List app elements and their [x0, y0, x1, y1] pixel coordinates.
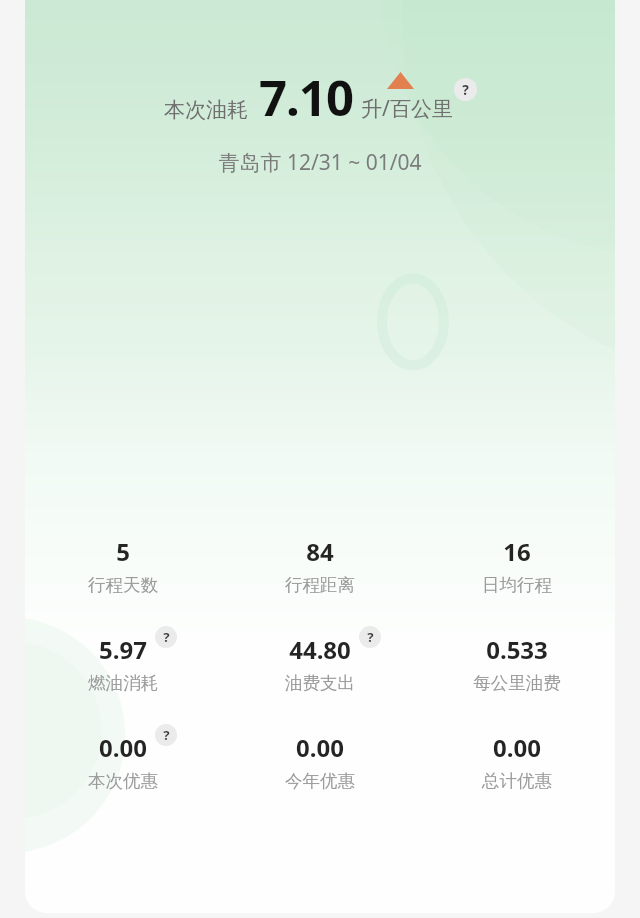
- button[interactable]: 说明: [155, 724, 177, 746]
- staticText: 燃油消耗: [88, 672, 158, 694]
- staticText: 0.533: [486, 633, 548, 666]
- button[interactable]: 5: [25, 535, 221, 596]
- button[interactable]: 84: [221, 535, 418, 596]
- staticText: ?: [462, 80, 469, 99]
- staticText: ?: [163, 628, 170, 646]
- staticText: 0.00: [296, 731, 344, 764]
- staticText: 5: [116, 535, 130, 568]
- staticText: 本次优惠: [88, 770, 158, 792]
- staticText: 行程天数: [88, 574, 158, 596]
- button[interactable]: 16: [418, 535, 615, 596]
- staticText: ?: [163, 726, 170, 744]
- staticText: 本次油耗: [164, 97, 248, 123]
- button[interactable]: 说明: [155, 626, 177, 648]
- staticText: 44.80: [289, 633, 351, 666]
- staticText: 今年优惠: [285, 770, 355, 792]
- staticText: 行程距离: [285, 574, 355, 596]
- staticText: 16: [503, 535, 531, 568]
- button[interactable]: 说明: [359, 626, 381, 648]
- staticText: 每公里油费: [473, 672, 561, 694]
- button[interactable]: 0.00: [25, 731, 221, 792]
- button[interactable]: 44.80: [221, 633, 418, 694]
- button[interactable]: 0.533: [418, 633, 615, 694]
- staticText: 5.97: [99, 633, 147, 666]
- button[interactable]: 0.00: [418, 731, 615, 792]
- staticText: 日均行程: [482, 574, 552, 596]
- staticText: 7.10: [259, 64, 353, 131]
- button[interactable]: 本次油耗: [164, 64, 477, 131]
- staticText: 升/百公里: [361, 94, 453, 123]
- staticText: 油费支出: [285, 672, 355, 694]
- button[interactable]: 说明: [454, 78, 477, 101]
- staticText: ?: [367, 628, 374, 646]
- staticText: 84: [306, 535, 334, 568]
- button[interactable]: 0.00: [221, 731, 418, 792]
- staticText: 0.00: [493, 731, 541, 764]
- button[interactable]: 青岛市 12/31 ~ 01/04: [218, 148, 422, 177]
- staticText: 0.00: [99, 731, 147, 764]
- button[interactable]: 5.97: [25, 633, 221, 694]
- staticText: 总计优惠: [482, 770, 552, 792]
